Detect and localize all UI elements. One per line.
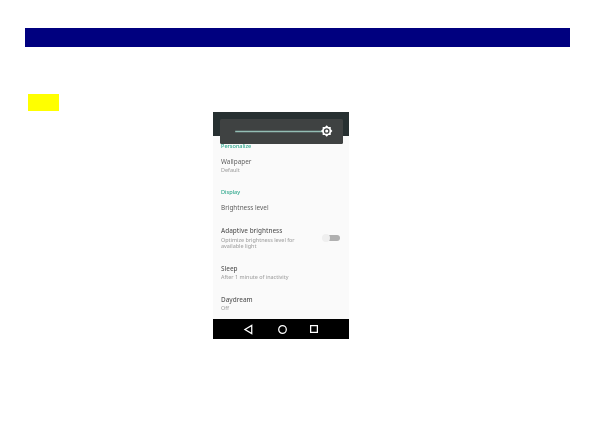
button[interactable]: Adaptive brightness toggle [321, 232, 341, 243]
button[interactable]: Adaptive brightness [213, 222, 349, 252]
button[interactable]: Recent apps [306, 321, 322, 337]
button[interactable]: Sleep [213, 260, 349, 285]
staticText: After 1 minute of inactivity [221, 273, 289, 280]
staticText: Daydream [221, 295, 253, 304]
button[interactable]: Wallpaper [213, 153, 349, 179]
staticText: Personalize [221, 142, 252, 150]
staticText: Off [221, 304, 229, 311]
staticText: Sleep [221, 264, 238, 273]
button[interactable]: Back [240, 321, 256, 337]
staticText: Adaptive brightness [221, 226, 283, 235]
button[interactable]: Brightness slider [220, 119, 343, 144]
staticText: Default [221, 166, 240, 173]
button[interactable]: Brightness level [213, 198, 349, 218]
staticText: Display [221, 188, 241, 196]
staticText: Wallpaper [221, 157, 252, 166]
staticText: Optimize brightness level for available … [221, 236, 295, 250]
staticText: Brightness level [221, 203, 269, 212]
button[interactable]: Daydream [213, 291, 349, 316]
button[interactable]: Home [274, 321, 290, 337]
